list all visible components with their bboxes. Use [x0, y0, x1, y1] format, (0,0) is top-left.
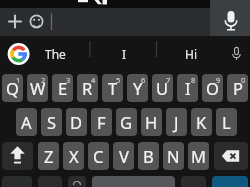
staticText: M — [191, 145, 206, 167]
staticText: R — [82, 77, 93, 99]
staticText: O — [206, 77, 219, 99]
button[interactable] — [92, 176, 175, 187]
button[interactable] — [210, 0, 250, 36]
button[interactable]: I — [177, 74, 198, 102]
staticText: L — [222, 111, 231, 133]
staticText: D — [70, 111, 83, 133]
staticText: 8 — [191, 75, 196, 85]
button[interactable]: G — [116, 108, 137, 136]
staticText: H — [145, 111, 158, 133]
button[interactable]: Y — [127, 74, 148, 102]
button[interactable] — [38, 176, 62, 187]
staticText: Z — [44, 145, 54, 167]
button[interactable] — [212, 176, 248, 187]
staticText: I — [122, 46, 127, 62]
button[interactable]: Q — [2, 74, 23, 102]
button[interactable] — [181, 176, 206, 187]
button[interactable]: Z — [38, 142, 59, 170]
staticText: 5 — [116, 75, 121, 85]
button[interactable]: B — [138, 142, 159, 170]
button[interactable]: The — [25, 42, 85, 66]
staticText: X — [69, 145, 79, 167]
button[interactable]: K — [191, 108, 212, 136]
staticText: S — [47, 111, 57, 133]
staticText: J — [174, 111, 179, 133]
button[interactable]: L — [216, 108, 237, 136]
staticText: The — [45, 46, 66, 62]
staticText: T — [108, 77, 118, 99]
button[interactable]: D — [66, 108, 87, 136]
staticText: 9 — [216, 75, 221, 85]
staticText: 1 — [16, 75, 21, 85]
staticText: U — [156, 77, 169, 99]
staticText: 2 — [41, 75, 46, 85]
staticText: P — [233, 77, 243, 99]
staticText: G — [120, 111, 133, 133]
button[interactable]: E — [52, 74, 73, 102]
button[interactable]: J — [166, 108, 187, 136]
staticText: E — [58, 77, 68, 99]
staticText: A — [21, 111, 32, 133]
button[interactable]: P — [227, 74, 248, 102]
button[interactable]: W — [27, 74, 48, 102]
button[interactable]: Hi — [161, 42, 221, 66]
button[interactable]: N — [163, 142, 184, 170]
staticText: V — [119, 145, 129, 167]
staticText: 0 — [241, 75, 246, 85]
button[interactable]: O — [202, 74, 223, 102]
button[interactable]: I — [94, 42, 154, 66]
staticText: B — [143, 145, 154, 167]
staticText: N — [167, 145, 180, 167]
button[interactable] — [214, 142, 248, 170]
staticText: Q — [6, 77, 19, 99]
staticText: F — [97, 111, 106, 133]
staticText: 7 — [166, 75, 171, 85]
button[interactable]: F — [91, 108, 112, 136]
button[interactable]: M — [188, 142, 209, 170]
button[interactable] — [2, 142, 33, 170]
staticText: Y — [133, 77, 143, 99]
staticText: W — [30, 77, 46, 99]
staticText: Hi — [185, 46, 197, 62]
staticText: I — [185, 77, 191, 99]
staticText: C — [93, 145, 104, 167]
button[interactable]: C — [88, 142, 109, 170]
button[interactable]: U — [152, 74, 173, 102]
button[interactable]: H — [141, 108, 162, 136]
staticText: 3 — [66, 75, 71, 85]
staticText: 4 — [91, 75, 96, 85]
button[interactable]: S — [41, 108, 62, 136]
staticText: 6 — [141, 75, 146, 85]
button[interactable] — [68, 176, 86, 187]
button[interactable]: R — [77, 74, 98, 102]
staticText: K — [196, 111, 207, 133]
button[interactable]: T — [102, 74, 123, 102]
button[interactable]: A — [16, 108, 37, 136]
button[interactable]: V — [113, 142, 134, 170]
button[interactable]: X — [63, 142, 84, 170]
